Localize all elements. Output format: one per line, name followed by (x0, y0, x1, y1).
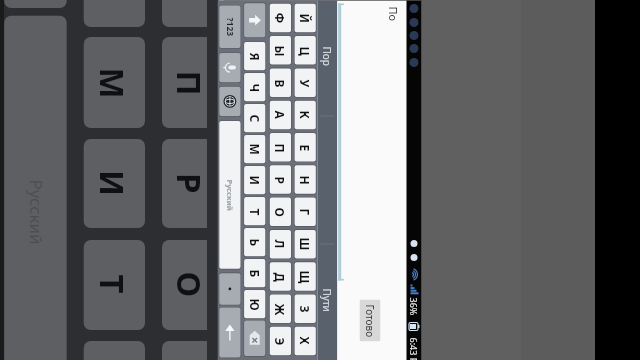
button[interactable]: Э (269, 326, 290, 355)
button[interactable]: О (269, 197, 290, 226)
staticText: ?123 (223, 17, 235, 36)
button[interactable]: З (294, 294, 315, 323)
button[interactable]: Ж (269, 294, 290, 323)
staticText: О (271, 207, 287, 217)
staticText: З (296, 305, 312, 313)
staticText: Л (271, 239, 287, 248)
staticText: Пути (319, 288, 333, 312)
button[interactable]: И (244, 166, 265, 194)
staticText: 36% (407, 297, 419, 315)
button[interactable]: Н (294, 165, 315, 194)
button[interactable]: М (244, 135, 265, 163)
button[interactable]: Щ (294, 262, 315, 291)
button[interactable]: Х (294, 326, 315, 355)
staticText: Д (271, 272, 287, 282)
staticText: Т (89, 274, 134, 294)
staticText: Готово (362, 304, 376, 337)
staticText: У (296, 79, 312, 87)
staticText: К (296, 110, 312, 119)
staticText: Р (167, 173, 212, 194)
button[interactable]: Ц (294, 36, 315, 65)
button[interactable]: Л (269, 229, 290, 258)
staticText: Ц (296, 46, 312, 56)
staticText: М (246, 143, 262, 155)
staticText: Русский (24, 179, 47, 245)
staticText: Г (296, 208, 312, 215)
staticText: Ы (271, 45, 287, 57)
staticText: Й (296, 13, 312, 23)
button[interactable]: А (269, 100, 290, 129)
button[interactable]: Русский (219, 121, 240, 269)
staticText: Ф (271, 12, 287, 23)
button[interactable]: Готово (359, 299, 380, 341)
staticText: Ч (246, 83, 262, 92)
button[interactable]: Д (269, 262, 290, 291)
button[interactable]: Я (244, 42, 265, 70)
staticText: Пор (319, 46, 333, 66)
staticText: П (166, 70, 211, 96)
staticText: Щ (296, 270, 312, 283)
staticText: Е (296, 144, 312, 151)
button[interactable]: Г (294, 197, 315, 226)
staticText: Русский (224, 179, 234, 211)
staticText: Р (271, 176, 287, 184)
staticText: 6:43 PM (407, 337, 419, 360)
button[interactable]: Е (294, 133, 315, 162)
button[interactable]: Ь (244, 228, 265, 256)
button[interactable]: Ы (269, 36, 290, 65)
button[interactable]: У (294, 68, 315, 97)
staticText: Б (246, 269, 262, 277)
staticText: Ж (271, 303, 287, 315)
button[interactable]: Ч (244, 73, 265, 101)
staticText: С (246, 114, 262, 122)
staticText: М (89, 67, 134, 99)
staticText: А (271, 110, 287, 119)
staticText: Ю (246, 298, 262, 311)
button[interactable]: Ф (269, 3, 290, 32)
staticText: Т (246, 208, 262, 215)
button[interactable]: Ш (294, 229, 315, 258)
staticText: И (90, 170, 135, 197)
staticText: Я (246, 52, 262, 61)
button[interactable]: Й (294, 3, 315, 32)
button[interactable]: К (294, 100, 315, 129)
button[interactable]: Ю (244, 290, 265, 318)
staticText: Н (296, 175, 312, 185)
button[interactable]: Р (269, 165, 290, 194)
button[interactable]: Т (244, 197, 265, 225)
staticText: П (271, 143, 287, 153)
staticText: Ш (296, 237, 312, 250)
button[interactable]: П (269, 133, 290, 162)
staticText: По (385, 6, 400, 21)
staticText: Э (271, 337, 287, 345)
staticText: В (271, 79, 287, 87)
staticText: О (166, 271, 211, 297)
button[interactable]: ?123 (219, 5, 240, 47)
staticText: И (246, 175, 262, 185)
staticText: Х (296, 336, 312, 345)
button[interactable]: Б (244, 259, 265, 287)
staticText: Ь (246, 238, 262, 246)
button[interactable]: В (269, 68, 290, 97)
button[interactable]: С (244, 104, 265, 132)
